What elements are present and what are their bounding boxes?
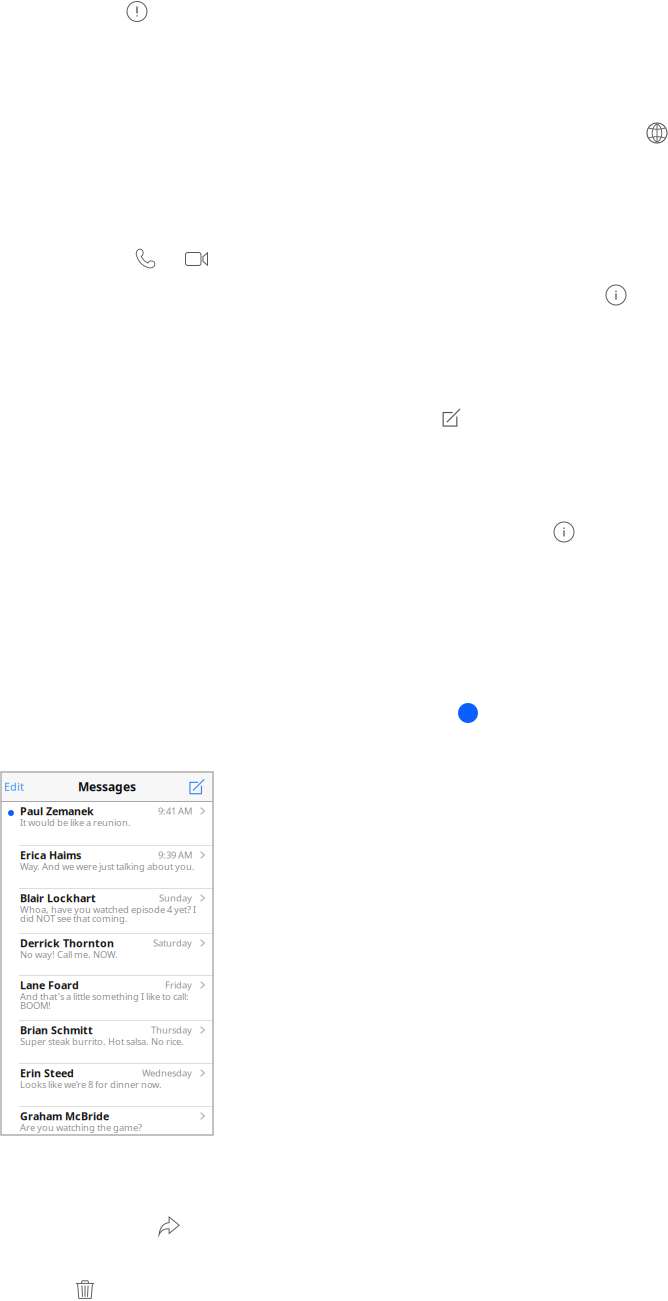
button[interactable]: Paul Zemanek — [1, 802, 213, 845]
staticText: Super steak burrito. Hot salsa. No rice. — [20, 1035, 184, 1048]
staticText: Wednesday — [142, 1067, 192, 1079]
staticText: Brian Schmitt — [20, 1023, 93, 1037]
staticText: 9:41 AM — [158, 805, 192, 817]
staticText: Are you watching the game? — [20, 1121, 142, 1134]
staticText: 9:39 AM — [158, 849, 192, 861]
button[interactable]: Derrick Thornton — [1, 934, 213, 975]
staticText: Friday — [165, 979, 192, 991]
staticText: Erin Steed — [20, 1066, 74, 1080]
staticText: Graham McBride — [20, 1109, 109, 1123]
button[interactable]: Compose — [442, 408, 461, 427]
staticText: Way. And we were just talking about you. — [20, 860, 195, 873]
staticText: And that's a little something I like to … — [20, 990, 189, 1003]
staticText: Whoa, have you watched episode 4 yet? I — [20, 903, 196, 916]
button[interactable]: Warning — [127, 1, 147, 21]
button[interactable]: Blair Lockhart — [1, 889, 213, 933]
staticText: BOOM! — [20, 999, 51, 1012]
button[interactable]: Brian Schmitt — [1, 1021, 213, 1063]
button[interactable]: Compose — [183, 772, 213, 800]
staticText: Looks like we’re 8 for dinner now. — [20, 1078, 162, 1091]
staticText: Erica Haims — [20, 848, 81, 862]
staticText: did NOT see that coming. — [20, 912, 128, 925]
button[interactable]: Call — [135, 248, 156, 269]
staticText: Blair Lockhart — [20, 891, 96, 905]
staticText: Sunday — [159, 892, 192, 904]
staticText: It would be like a reunion. — [20, 816, 131, 829]
staticText: Saturday — [153, 937, 192, 949]
staticText: Edit — [4, 779, 24, 794]
staticText: Messages — [78, 778, 136, 794]
button[interactable]: Erica Haims — [1, 846, 213, 888]
button[interactable]: Globe — [647, 123, 667, 143]
button[interactable]: Lane Foard — [1, 976, 213, 1020]
staticText: Thursday — [151, 1024, 192, 1036]
button[interactable]: Edit — [1, 772, 33, 801]
staticText: Paul Zemanek — [20, 804, 94, 818]
button[interactable]: Graham McBride — [1, 1107, 213, 1138]
staticText: Lane Foard — [20, 978, 79, 992]
button[interactable]: Delete — [75, 1279, 95, 1299]
staticText: Derrick Thornton — [20, 936, 114, 950]
button[interactable]: Info — [554, 522, 574, 542]
button[interactable]: Erin Steed — [1, 1064, 213, 1106]
button[interactable]: Share — [158, 1215, 180, 1237]
button[interactable]: FaceTime video call — [185, 252, 208, 266]
staticText: No way! Call me. NOW. — [20, 948, 118, 961]
button[interactable]: Info — [606, 285, 626, 305]
